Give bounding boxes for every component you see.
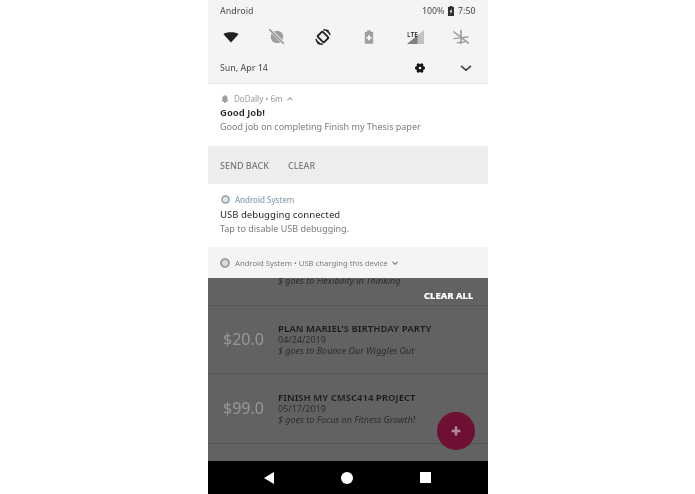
button[interactable]: Expand xyxy=(453,55,479,81)
staticText: 7:50 xyxy=(458,5,476,17)
button[interactable]: $99.0 xyxy=(208,373,488,443)
button[interactable]: $20.0 xyxy=(208,305,488,373)
button[interactable]: Do not disturb xyxy=(254,22,300,52)
button[interactable]: Back xyxy=(247,461,291,494)
button[interactable]: Home xyxy=(325,461,369,494)
staticText: PLAN MARIEL'S BIRTHDAY PARTY xyxy=(278,322,432,335)
staticText: USB debugging connected xyxy=(220,208,341,221)
button[interactable]: DoDally • 6m xyxy=(208,84,488,146)
staticText: $ goes to Flexibility in Thinking xyxy=(278,274,401,286)
button[interactable]: CLEAR xyxy=(282,153,322,177)
button[interactable]: Add xyxy=(437,412,475,450)
staticText: Android System xyxy=(235,194,295,205)
staticText: Android xyxy=(220,5,254,17)
staticText: CLEAR xyxy=(288,159,316,171)
button[interactable]: Android System • USB charging this devic… xyxy=(208,247,488,278)
staticText: 04/24/2019 xyxy=(278,333,326,345)
button[interactable]: Android System xyxy=(208,185,488,247)
button[interactable]: Battery saver xyxy=(346,22,392,52)
button[interactable]: CLEAR ALL xyxy=(418,286,480,305)
staticText: Sun, Apr 14 xyxy=(220,62,268,74)
staticText: SEND BACK xyxy=(220,159,269,171)
button[interactable]: Mobile data xyxy=(392,22,438,52)
button[interactable]: Settings xyxy=(407,55,433,81)
button[interactable]: Recents xyxy=(403,461,447,494)
button[interactable]: Auto rotate xyxy=(300,22,346,52)
staticText: $ goes to Bounce Our Wiggles Out xyxy=(278,344,415,356)
staticText: FINISH MY CMSC414 PROJECT xyxy=(278,391,416,404)
staticText: LTE xyxy=(407,30,418,39)
staticText: Good Job! xyxy=(220,106,265,119)
staticText: CLEAR ALL xyxy=(424,289,474,302)
staticText: Good job on completing Finish my Thesis … xyxy=(220,120,421,132)
staticText: 100% xyxy=(422,5,445,17)
button[interactable]: SEND BACK xyxy=(214,153,275,177)
staticText: 05/17/2019 xyxy=(278,402,326,414)
staticText: $ goes to Focus on Fitness Growth! xyxy=(278,413,416,425)
staticText: $99.0 xyxy=(223,397,264,419)
button[interactable]: Airplane mode xyxy=(438,22,484,52)
button[interactable]: Wi-Fi xyxy=(208,22,254,52)
staticText: Android System • USB charging this devic… xyxy=(235,258,388,268)
staticText: Tap to disable USB debugging. xyxy=(220,222,350,234)
staticText: $20.0 xyxy=(223,328,264,350)
staticText: DoDally • 6m xyxy=(234,93,283,104)
